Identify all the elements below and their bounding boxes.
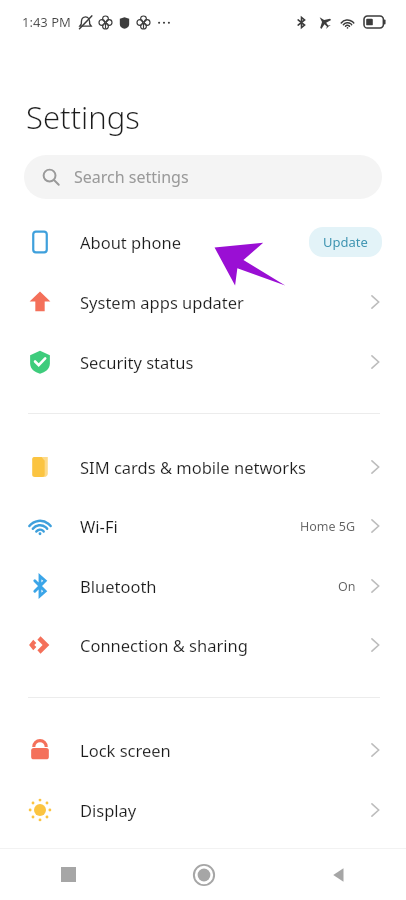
staticText: Wi-Fi — [80, 515, 118, 537]
button[interactable]: Wi-Fi — [0, 498, 406, 554]
staticText: Lock screen — [80, 739, 171, 761]
button[interactable]: SIM cards & mobile networks — [0, 439, 406, 495]
staticText: Home 5G — [300, 518, 356, 535]
button[interactable]: Security status — [0, 334, 406, 390]
button[interactable]: Update — [309, 227, 382, 257]
staticText: About phone — [80, 231, 181, 253]
staticText: Bluetooth — [80, 575, 157, 597]
button[interactable]: Bluetooth — [0, 558, 406, 614]
button[interactable]: About phone — [0, 214, 406, 270]
staticText: Search settings — [74, 166, 189, 188]
staticText: System apps updater — [80, 291, 244, 313]
staticText: On — [338, 578, 356, 595]
staticText: SIM cards & mobile networks — [80, 456, 306, 478]
staticText: Update — [323, 233, 368, 251]
button[interactable]: Search settings — [24, 155, 382, 199]
staticText: Security status — [80, 351, 194, 373]
button[interactable]: Connection & sharing — [0, 617, 406, 673]
button[interactable]: Lock screen — [0, 722, 406, 778]
button[interactable]: Home — [136, 849, 271, 900]
button[interactable]: Display — [0, 782, 406, 838]
staticText: 1:43 PM — [22, 13, 71, 31]
button[interactable]: Back — [271, 849, 406, 900]
button[interactable]: Recents — [0, 849, 136, 900]
staticText: Connection & sharing — [80, 634, 248, 656]
staticText: Settings — [26, 96, 140, 138]
button[interactable]: System apps updater — [0, 274, 406, 330]
staticText: Display — [80, 799, 137, 821]
